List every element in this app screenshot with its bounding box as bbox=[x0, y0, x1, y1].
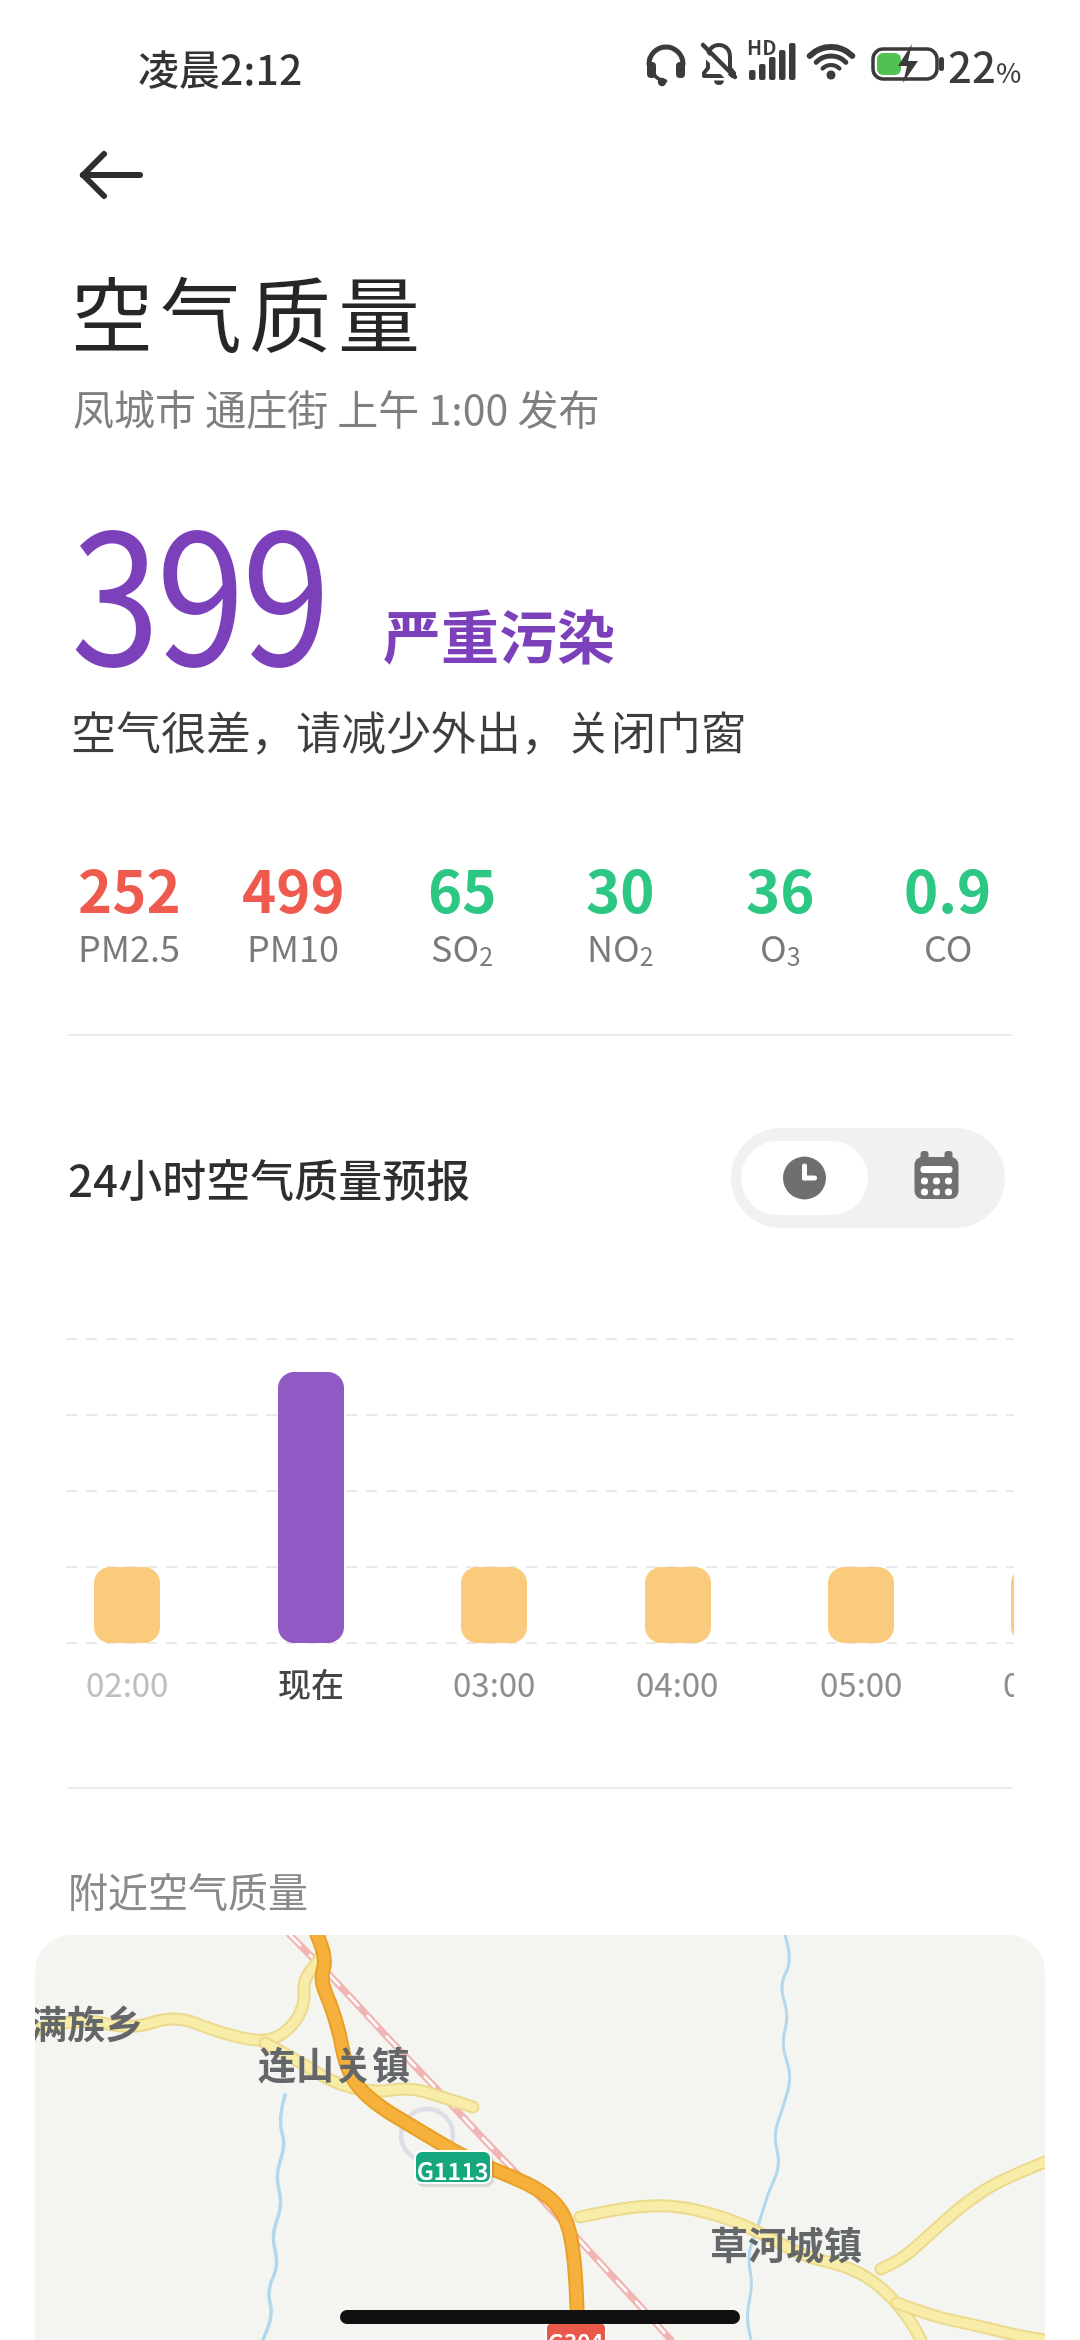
staticText: 附近空气质量 bbox=[68, 1861, 308, 1919]
staticText: 36 bbox=[746, 846, 815, 930]
staticText: 空气很差，请减少外出，关闭门窗 bbox=[71, 698, 747, 763]
staticText: O3 bbox=[760, 920, 801, 973]
staticText: 草河城镇 bbox=[710, 2215, 863, 2270]
button[interactable] bbox=[868, 1128, 1005, 1228]
staticText: 22% bbox=[948, 34, 1022, 95]
staticText: HD bbox=[747, 32, 777, 61]
staticText: 连山关镇 bbox=[258, 2035, 411, 2090]
button[interactable]: 满族乡 bbox=[35, 1935, 1045, 2340]
staticText: G304 bbox=[548, 2324, 604, 2340]
staticText: 空气质量 bbox=[71, 251, 428, 370]
staticText: 凌晨2:12 bbox=[138, 37, 303, 96]
staticText: 05:00 bbox=[820, 1659, 903, 1707]
staticText: 0.9 bbox=[904, 846, 992, 930]
staticText: 严重污染 bbox=[383, 592, 616, 676]
staticText: PM10 bbox=[247, 920, 339, 972]
staticText: 24小时空气质量预报 bbox=[68, 1146, 471, 1210]
staticText: 03:00 bbox=[453, 1659, 536, 1707]
staticText: NO2 bbox=[587, 920, 654, 973]
staticText: CO bbox=[924, 920, 973, 972]
staticText: 65 bbox=[428, 846, 497, 930]
staticText: SO2 bbox=[431, 920, 494, 973]
button[interactable] bbox=[60, 130, 160, 220]
staticText: 30 bbox=[586, 846, 655, 930]
staticText: PM2.5 bbox=[78, 920, 180, 972]
staticText: 满族乡 bbox=[35, 1994, 144, 2049]
staticText: G1113 bbox=[417, 2152, 489, 2182]
staticText: 04:00 bbox=[636, 1659, 719, 1707]
button[interactable] bbox=[741, 1141, 868, 1215]
staticText: 凤城市 通庄街 上午 1:00 发布 bbox=[73, 377, 600, 436]
staticText: 252 bbox=[78, 846, 181, 930]
staticText: 02:00 bbox=[86, 1659, 169, 1707]
staticText: 499 bbox=[242, 846, 345, 930]
staticText: 06:00 bbox=[1003, 1659, 1014, 1707]
staticText: 现在 bbox=[278, 1659, 344, 1707]
staticText: 399 bbox=[71, 455, 328, 695]
